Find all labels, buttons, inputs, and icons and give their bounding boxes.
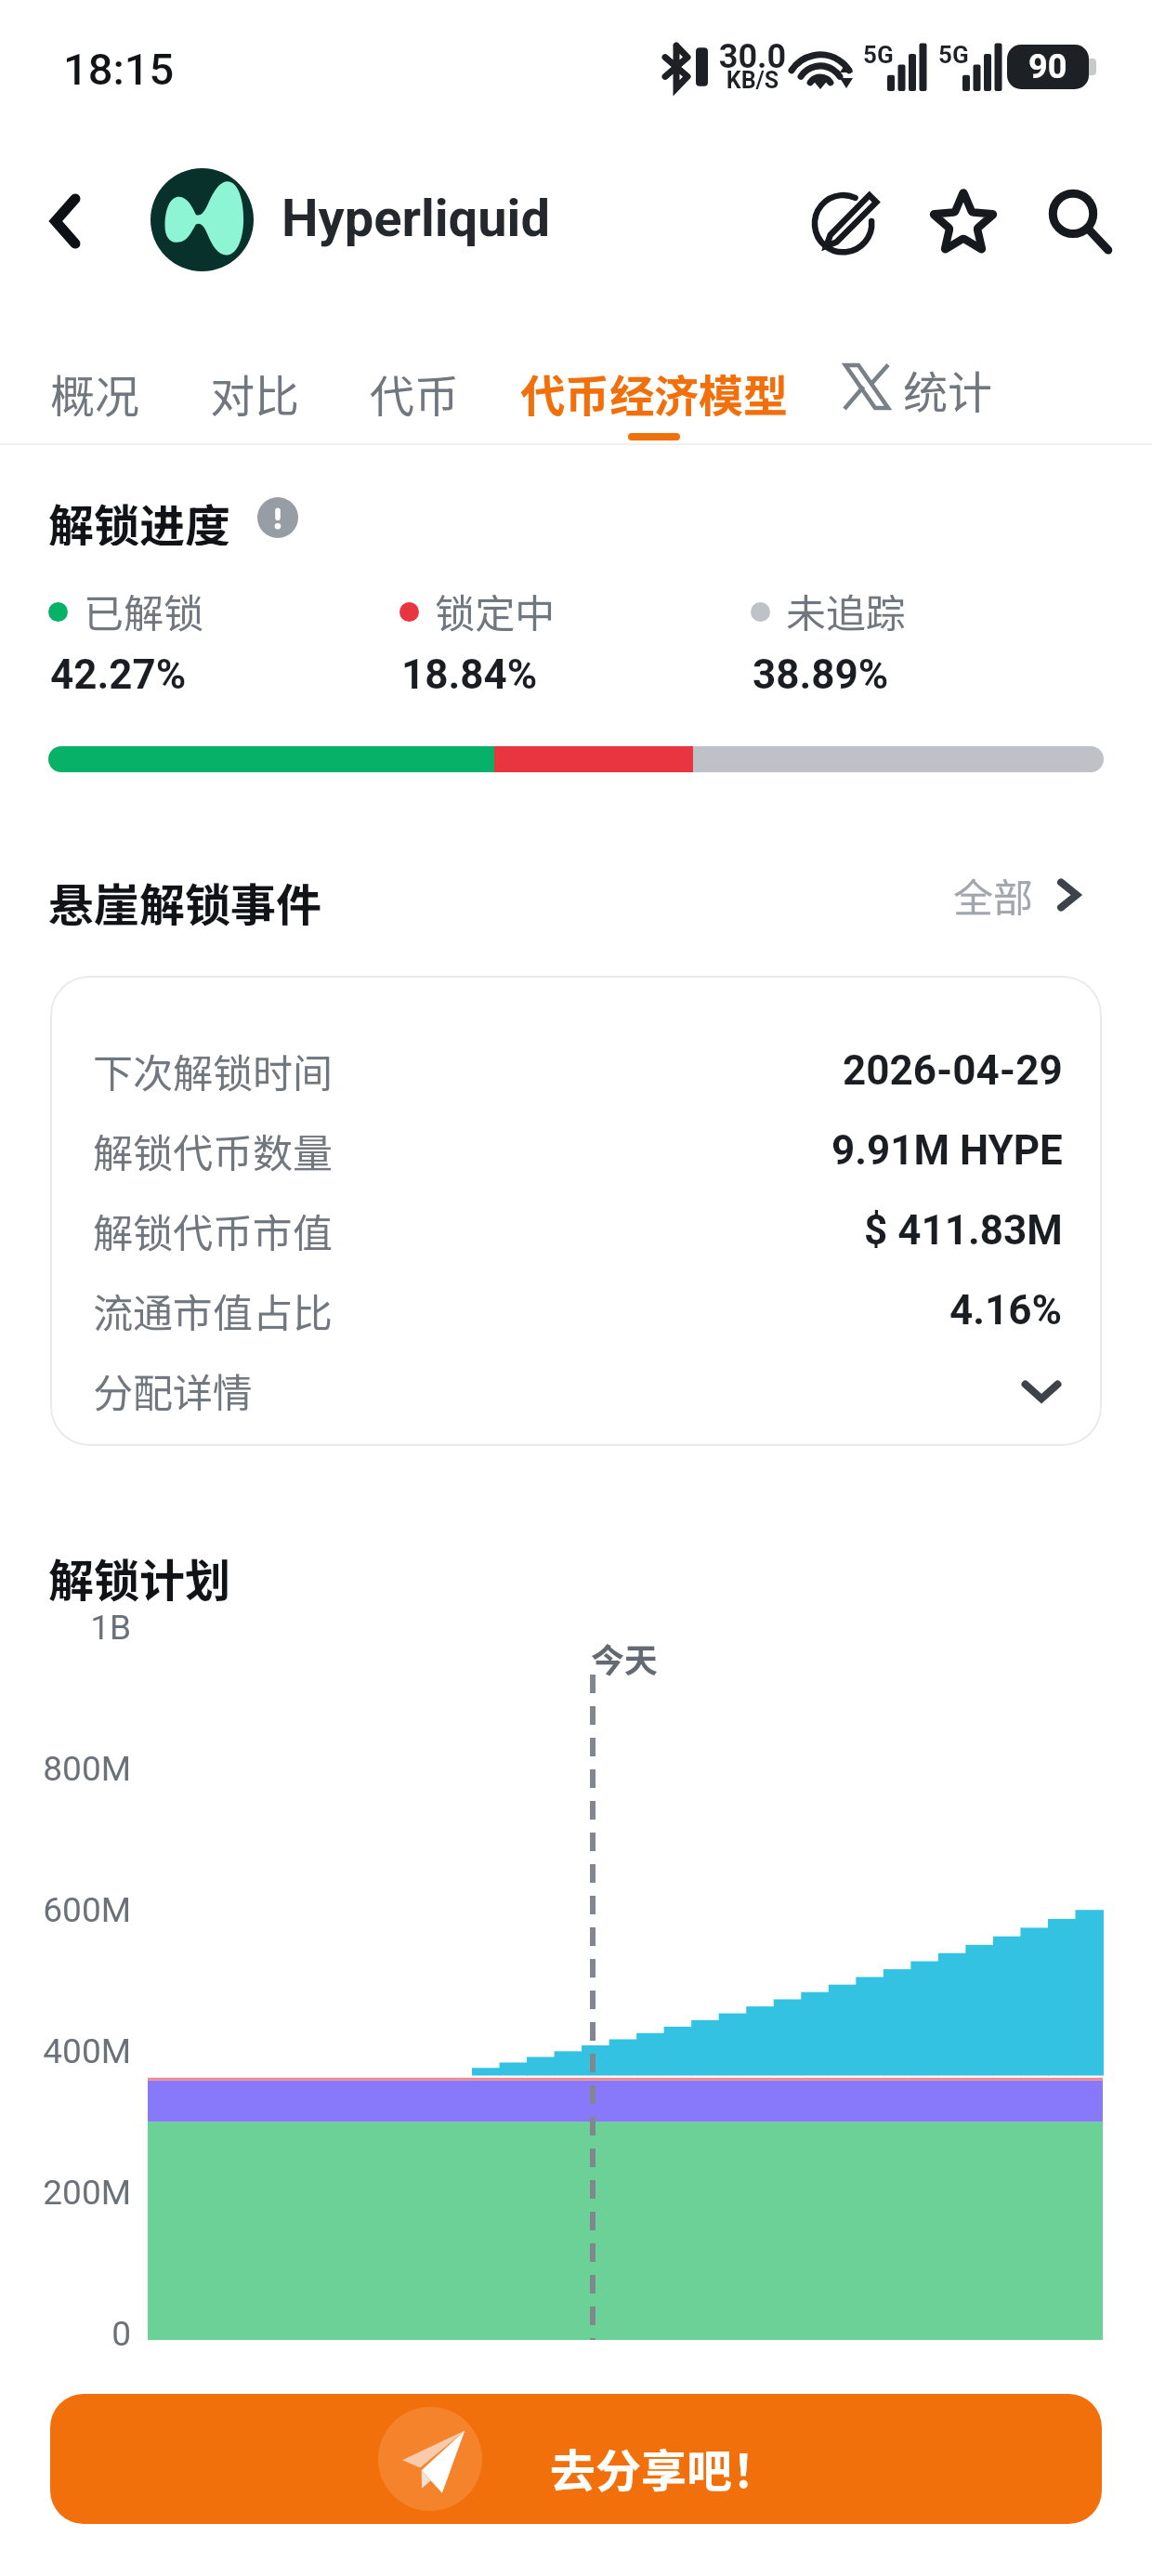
button[interactable]: 分配详情 <box>93 1350 1063 1430</box>
staticText: 未追踪 <box>786 582 906 639</box>
staticText: 解锁计划 <box>48 1544 231 1610</box>
staticText: 4.16% <box>949 1286 1063 1334</box>
staticText: $ 411.83M <box>864 1206 1063 1255</box>
staticText: 800M <box>0 1749 131 1789</box>
staticText: 统计 <box>903 357 993 416</box>
staticText: 400M <box>0 2031 131 2071</box>
staticText: 代币经济模型 <box>520 361 788 426</box>
button[interactable]: 全部 <box>953 865 1087 925</box>
staticText: 锁定中 <box>435 582 555 639</box>
staticText: KB/S <box>715 67 790 94</box>
button[interactable]: Search <box>1031 174 1128 270</box>
staticText: 200M <box>0 2173 131 2213</box>
button[interactable]: 代币经济模型 <box>520 351 788 444</box>
staticText: 18.84% <box>401 651 538 699</box>
staticText: 全部 <box>953 866 1033 924</box>
staticText: 今天 <box>591 1634 659 1682</box>
button[interactable]: 对比 <box>209 351 300 444</box>
staticText: 30.0 <box>715 37 790 76</box>
staticText: 90 <box>1028 47 1067 86</box>
staticText: Hyperliquid <box>281 188 550 249</box>
staticText: 1B <box>0 1608 131 1648</box>
staticText: 5G <box>938 41 969 69</box>
staticText: 对比 <box>209 361 300 426</box>
button[interactable]: 统计 <box>844 357 993 416</box>
staticText: 2026-04-29 <box>843 1046 1063 1095</box>
staticText: 去分享吧！ <box>550 2435 779 2501</box>
button[interactable]: 代币 <box>369 351 460 444</box>
staticText: 下次解锁时间 <box>93 1042 333 1099</box>
button[interactable]: 概况 <box>49 351 140 444</box>
staticText: 9.91M HYPE <box>831 1126 1063 1175</box>
staticText: 42.27% <box>50 651 187 699</box>
staticText: 流通市值占比 <box>93 1281 333 1339</box>
staticText: 解锁代币市值 <box>93 1202 333 1259</box>
button[interactable]: Back <box>28 182 106 260</box>
staticText: 分配详情 <box>93 1361 253 1419</box>
staticText: 18:15 <box>63 44 175 95</box>
staticText: 5G <box>863 41 894 69</box>
button[interactable]: 去分享吧！ <box>50 2394 1102 2524</box>
staticText: 已解锁 <box>84 582 203 639</box>
staticText: 38.89% <box>753 651 889 699</box>
button[interactable]: Edit <box>803 174 899 270</box>
staticText: 概况 <box>49 361 140 426</box>
staticText: 解锁进度 <box>48 490 231 545</box>
staticText: 解锁代币数量 <box>93 1122 333 1179</box>
staticText: 代币 <box>369 361 460 426</box>
button[interactable]: Favorite <box>915 174 1012 270</box>
staticText: 0 <box>0 2314 131 2354</box>
staticText: 600M <box>0 1890 131 1930</box>
staticText: 悬崖解锁事件 <box>48 869 322 935</box>
